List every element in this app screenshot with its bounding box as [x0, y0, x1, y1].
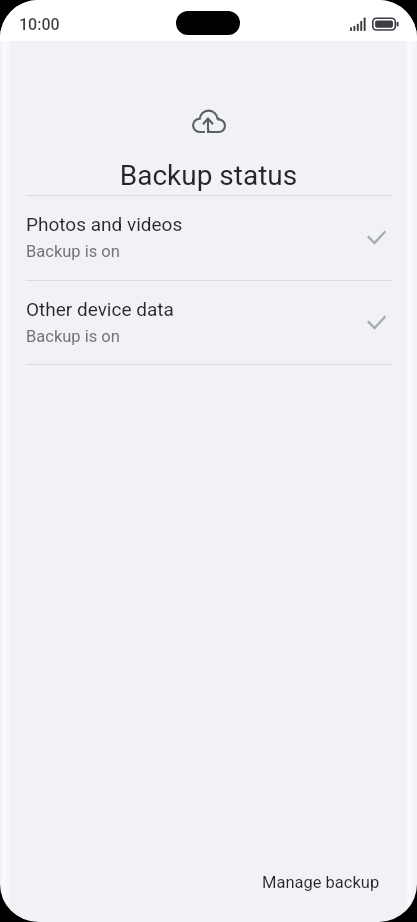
other: Cloud upload [192, 110, 226, 133]
other: Backup is on [366, 316, 386, 329]
staticText: Backup status [0, 159, 417, 192]
other: Battery [372, 17, 399, 31]
staticText: Backup is on [26, 327, 120, 346]
staticText: Backup is on [26, 242, 120, 261]
other: Cellular signal [350, 17, 366, 31]
staticText: Photos and videos [26, 213, 183, 235]
button[interactable]: Other device data [0, 280, 417, 365]
other: Backup is on [366, 231, 386, 244]
staticText: Other device data [26, 298, 174, 320]
staticText: 10:00 [19, 15, 60, 34]
button[interactable]: Manage backup [236, 859, 417, 922]
button[interactable]: Photos and videos [0, 195, 417, 280]
staticText: Manage backup [262, 873, 380, 892]
